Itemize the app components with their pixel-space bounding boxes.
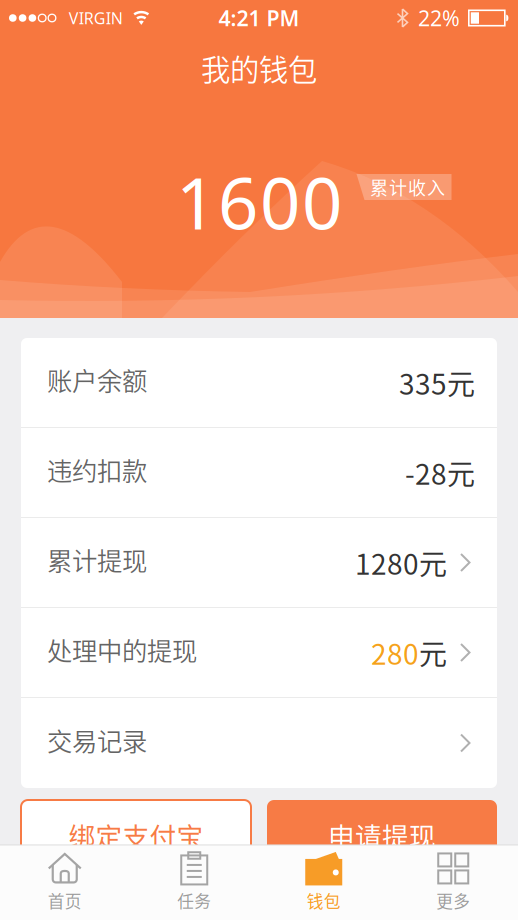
staticText: 1600: [176, 155, 342, 249]
staticText: 账户余额: [47, 361, 147, 398]
staticText: 交易记录: [47, 722, 147, 758]
staticText: -28元: [405, 452, 475, 493]
staticText: 1280元: [355, 542, 447, 583]
staticText: 钱包: [307, 888, 341, 912]
staticText: VIRGIN: [69, 7, 123, 29]
staticText: 申请提现: [328, 816, 436, 854]
staticText: 绑定支付宝: [68, 816, 203, 854]
staticText: 违约扣款: [47, 451, 147, 488]
staticText: 累计收入: [370, 174, 445, 200]
staticText: 首页: [48, 888, 82, 912]
staticText: 我的钱包: [201, 47, 317, 89]
staticText: 元: [419, 632, 447, 673]
staticText: 4:21 PM: [218, 4, 299, 32]
staticText: 335元: [399, 362, 475, 403]
staticText: 280: [371, 632, 419, 673]
staticText: 22%: [418, 4, 460, 32]
staticText: 更多: [436, 888, 470, 912]
staticText: 任务: [177, 888, 211, 912]
staticText: 累计提现: [47, 541, 147, 578]
staticText: 处理中的提现: [47, 631, 197, 668]
